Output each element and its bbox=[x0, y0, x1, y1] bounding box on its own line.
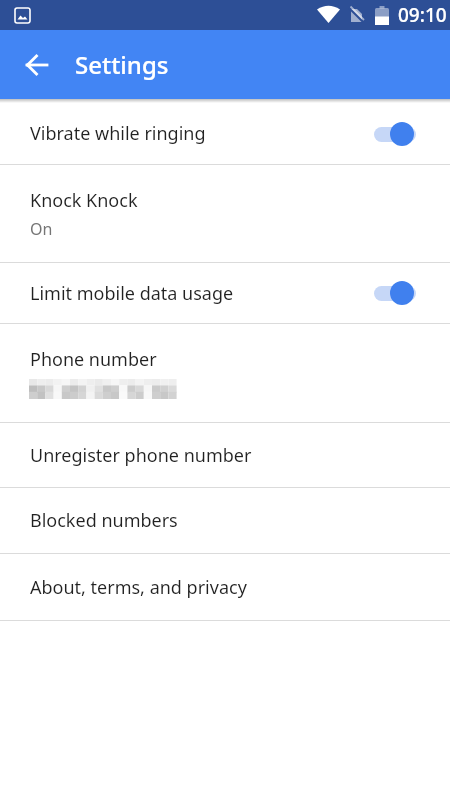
staticText: Blocked numbers bbox=[30, 508, 178, 533]
staticText: On bbox=[30, 218, 53, 240]
staticText: Settings bbox=[75, 48, 169, 81]
staticText: About, terms, and privacy bbox=[30, 575, 247, 600]
button[interactable]: Phone number bbox=[0, 324, 450, 422]
button[interactable]: Unregister phone number bbox=[0, 423, 450, 487]
staticText: Knock Knock bbox=[30, 188, 138, 213]
staticText: Limit mobile data usage bbox=[30, 281, 234, 306]
button[interactable] bbox=[13, 41, 61, 89]
button[interactable]: Knock Knock bbox=[0, 165, 450, 262]
staticText: Unregister phone number bbox=[30, 443, 252, 468]
button[interactable]: Vibrate while ringing bbox=[0, 103, 450, 164]
staticText: Vibrate while ringing bbox=[30, 121, 206, 146]
button[interactable] bbox=[374, 279, 416, 307]
button[interactable]: Limit mobile data usage bbox=[0, 263, 450, 323]
staticText: Phone number bbox=[30, 347, 157, 372]
staticText: 09:10 bbox=[398, 2, 447, 28]
button[interactable]: Blocked numbers bbox=[0, 488, 450, 553]
button[interactable]: About, terms, and privacy bbox=[0, 554, 450, 620]
button[interactable] bbox=[374, 120, 416, 148]
